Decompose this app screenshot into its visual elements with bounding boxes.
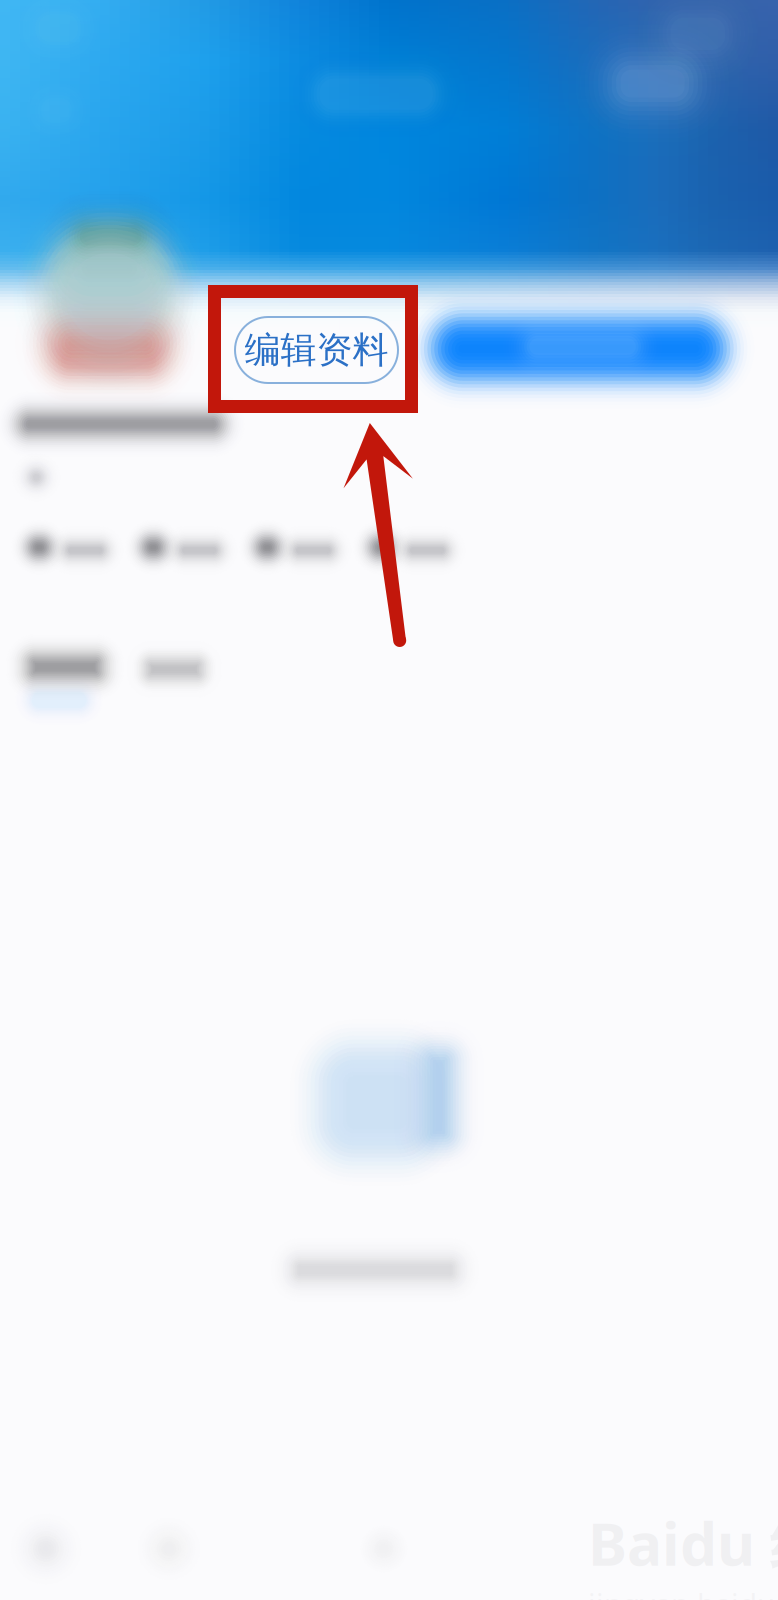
- button[interactable]: 编辑资料: [235, 317, 398, 383]
- button[interactable]: 回复: [127, 641, 222, 698]
- button[interactable]: 发现: [131, 1511, 207, 1587]
- button[interactable]: 主题: [6, 634, 124, 700]
- button[interactable]: 首页: [6, 1509, 86, 1589]
- button[interactable]: 发私信: [0, 0, 351, 119]
- staticText: Baidu 经验: [588, 1504, 778, 1582]
- staticText: 编辑资料: [244, 328, 388, 372]
